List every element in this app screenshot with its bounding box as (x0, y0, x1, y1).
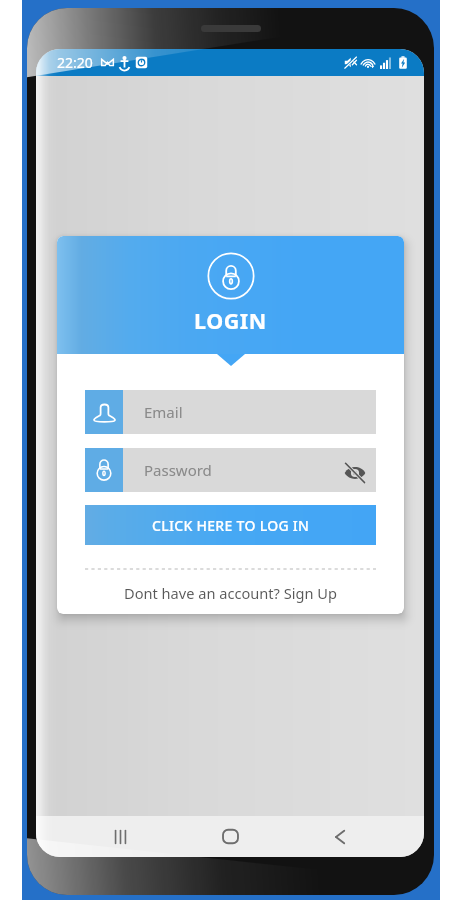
button[interactable]: CLICK HERE TO LOG IN (85, 505, 376, 545)
button[interactable]: Show password (336, 448, 374, 492)
button[interactable]: Back (285, 816, 395, 857)
button[interactable]: Email (85, 390, 376, 434)
staticText: Email (144, 402, 183, 422)
button[interactable]: Home (175, 816, 285, 857)
staticText: 22:20 (57, 53, 93, 72)
button[interactable]: Recent apps (65, 816, 175, 857)
button[interactable]: Dont have an account? Sign Up (124, 583, 337, 603)
staticText: CLICK HERE TO LOG IN (152, 516, 310, 535)
staticText: Password (144, 460, 212, 480)
button[interactable]: Password (85, 448, 376, 492)
staticText: LOGIN (194, 306, 267, 335)
